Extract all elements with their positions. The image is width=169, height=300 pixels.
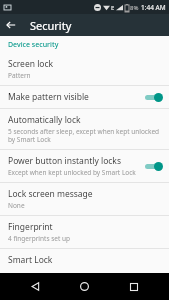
button[interactable]: Make pattern visible <box>0 86 169 108</box>
button[interactable]: Back <box>22 273 49 300</box>
button[interactable]: Smart Lock <box>0 249 169 271</box>
button[interactable]: Power button instantly locks <box>0 150 169 182</box>
staticText: 1:44 AM <box>141 3 166 12</box>
staticText: Automatically lock <box>8 114 81 126</box>
staticText: Fingerprint <box>8 221 53 233</box>
button[interactable]: Lock screen message <box>0 183 169 215</box>
staticText: Lock screen message <box>8 188 93 200</box>
button[interactable]: Recent apps <box>120 273 147 300</box>
staticText: Device security <box>8 40 59 50</box>
staticText: 5 seconds after sleep, except when kept … <box>8 127 163 144</box>
staticText: Security <box>30 18 72 33</box>
button[interactable]: Home <box>71 273 98 300</box>
staticText: Power button instantly locks <box>8 155 121 167</box>
button[interactable]: Back <box>0 14 22 36</box>
button[interactable]: Automatically lock <box>0 109 169 149</box>
staticText: 8% <box>130 4 139 12</box>
button[interactable]: Screen lock <box>0 53 169 85</box>
staticText: Except when kept unlocked by Smart Lock <box>8 168 136 177</box>
staticText: Screen lock <box>8 58 54 70</box>
staticText: 4 fingerprints set up <box>8 234 71 243</box>
button[interactable]: Toggle <box>143 91 163 103</box>
staticText: Pattern <box>8 71 31 80</box>
staticText: E <box>111 4 115 12</box>
staticText: Smart Lock <box>8 254 53 266</box>
button[interactable]: Fingerprint <box>0 216 169 248</box>
staticText: None <box>8 201 25 210</box>
button[interactable]: Toggle <box>143 160 163 172</box>
staticText: Make pattern visible <box>8 91 89 103</box>
